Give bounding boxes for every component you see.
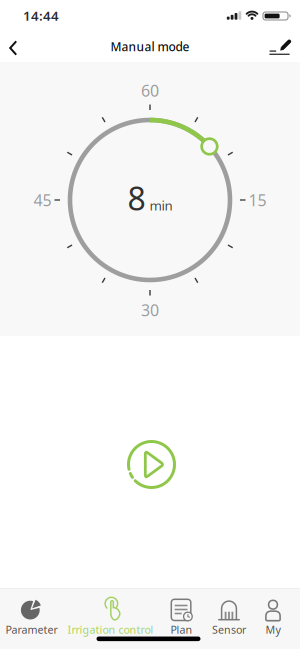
staticText: 45 [33, 189, 51, 211]
button[interactable]: Back [0, 33, 28, 63]
button[interactable]: Start irrigation [125, 438, 177, 490]
button[interactable]: My [243, 589, 300, 645]
button[interactable]: Sensor [199, 589, 259, 645]
button[interactable]: Edit [260, 31, 294, 61]
staticText: 30 [141, 299, 159, 321]
button[interactable]: Irrigation control [67, 589, 153, 645]
staticText: 60 [141, 80, 159, 101]
staticText: 14:44 [23, 7, 59, 24]
staticText: 15 [248, 189, 266, 211]
staticText: min [149, 196, 172, 214]
staticText: Manual mode [110, 38, 189, 54]
staticText: Parameter [5, 622, 57, 637]
staticText: 8 [127, 177, 145, 219]
staticText: Sensor [212, 622, 246, 637]
button[interactable]: Parameter [1, 589, 61, 645]
staticText: Plan [170, 622, 192, 637]
button[interactable]: Plan [151, 589, 211, 645]
staticText: Irrigation control [67, 622, 153, 637]
staticText: My [265, 622, 280, 637]
